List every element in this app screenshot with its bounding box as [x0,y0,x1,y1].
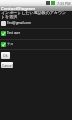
staticText: 7:33 PM [57,1,71,6]
staticText: Test user [7,31,21,35]
staticText: テス [7,42,14,46]
staticText: インポートしたい電話帳のアカウントを選択 [1,10,67,19]
button[interactable]: テス [0,39,72,49]
button[interactable]: Test user [0,28,72,38]
button[interactable]: Ok [1,52,10,59]
staticText: Test@gmail.com [7,21,31,25]
staticText: Cancel [2,63,13,68]
button[interactable]: Cancel [1,62,13,68]
staticText: ContactDiagram [1,6,36,11]
staticText: Ok [3,53,8,58]
button[interactable]: Test@gmail.com [0,18,72,28]
